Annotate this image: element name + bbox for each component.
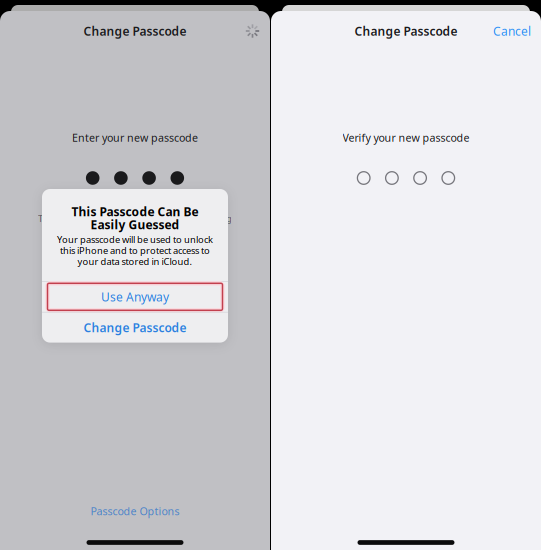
- staticText: your data stored in iCloud.: [77, 255, 192, 268]
- button[interactable]: Cancel: [493, 23, 531, 39]
- staticText: Passcode Options: [90, 504, 179, 518]
- staticText: This Passcode Can Be: [71, 203, 198, 219]
- button[interactable]: Use Anyway: [42, 282, 228, 312]
- staticText: Change Passcode: [354, 23, 457, 39]
- staticText: Change Passcode: [83, 23, 186, 39]
- staticText: Easily Guessed: [90, 216, 179, 232]
- staticText: Change Passcode: [83, 320, 186, 335]
- staticText: this iPhone and to protect access to: [60, 244, 210, 257]
- button[interactable]: Change Passcode: [42, 313, 228, 343]
- staticText: The passcode must be at least four digit…: [38, 212, 232, 225]
- staticText: Your passcode will be used to unlock: [57, 233, 213, 246]
- staticText: Verify your new passcode: [342, 130, 469, 145]
- staticText: Cancel: [493, 23, 531, 39]
- staticText: Use Anyway: [101, 289, 169, 305]
- staticText: Enter your new passcode: [72, 130, 198, 145]
- button[interactable]: Passcode Options: [0, 503, 270, 519]
